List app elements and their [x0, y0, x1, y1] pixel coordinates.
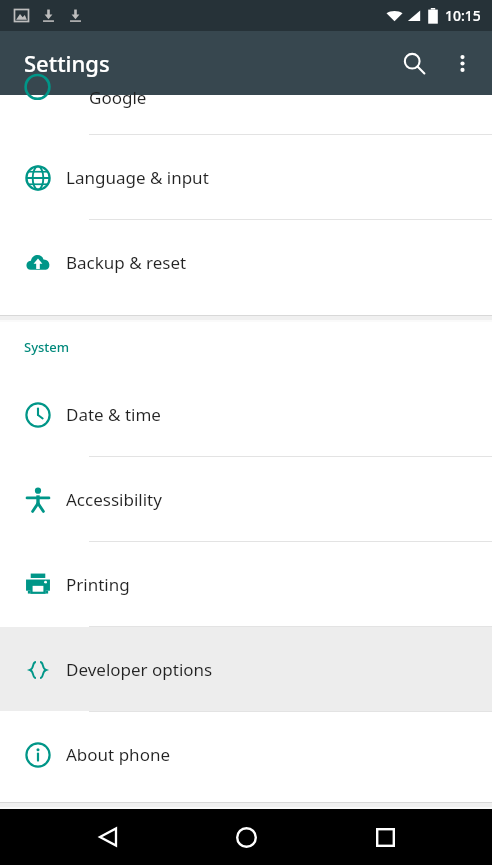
button[interactable]: Language & input — [0, 135, 492, 219]
button[interactable]: Search — [390, 39, 438, 87]
staticText: Settings — [24, 48, 110, 78]
staticText: Printing — [66, 573, 130, 596]
staticText: Accessibility — [66, 488, 162, 511]
button[interactable]: About phone — [0, 712, 492, 796]
button[interactable]: Back — [77, 809, 139, 865]
button[interactable]: Recent apps — [354, 809, 416, 865]
staticText: Date & time — [66, 403, 161, 426]
button[interactable]: Home — [215, 809, 277, 865]
button[interactable]: Date & time — [0, 372, 492, 456]
staticText: About phone — [66, 743, 171, 766]
staticText: Backup & reset — [66, 251, 187, 274]
staticText: Developer options — [66, 658, 213, 681]
staticText: Language & input — [66, 166, 209, 189]
staticText: 10:15 — [445, 6, 481, 25]
staticText: System — [24, 338, 70, 356]
button[interactable]: Google — [0, 95, 492, 134]
staticText: Google — [89, 86, 147, 109]
button[interactable]: Backup & reset — [0, 220, 492, 304]
button[interactable]: Printing — [0, 542, 492, 626]
button[interactable]: Developer options — [0, 627, 492, 711]
button[interactable]: Accessibility — [0, 457, 492, 541]
button[interactable]: More options — [438, 39, 486, 87]
